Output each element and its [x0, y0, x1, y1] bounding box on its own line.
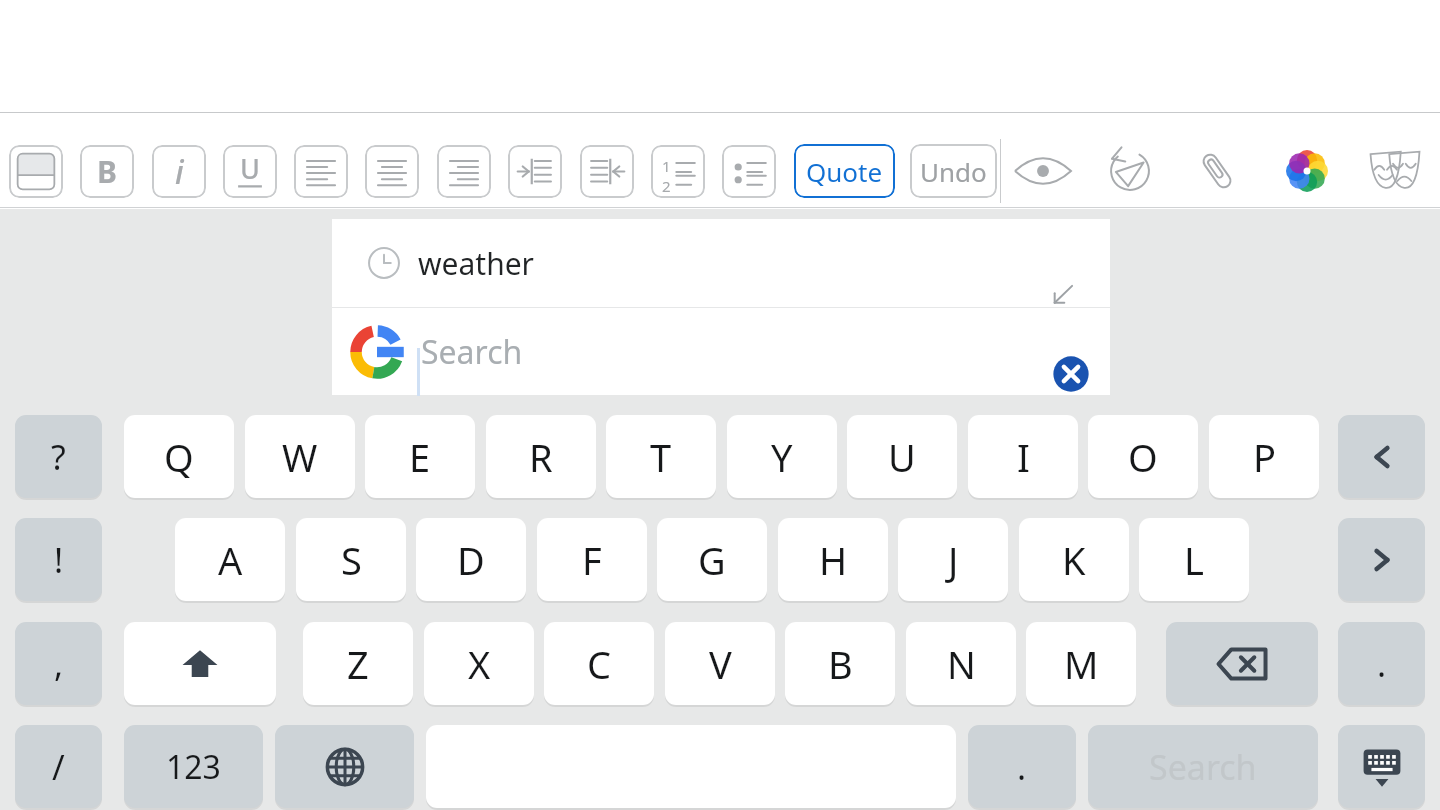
button[interactable]: Indent — [508, 145, 562, 198]
button[interactable]: G — [657, 518, 767, 601]
button[interactable]: F — [537, 518, 647, 601]
button[interactable]: Hide keyboard — [1338, 725, 1425, 808]
staticText: S — [341, 534, 362, 586]
button[interactable]: Shift — [124, 622, 276, 705]
staticText: W — [282, 431, 318, 483]
button[interactable]: Preview — [1008, 143, 1078, 199]
button[interactable]: K — [1019, 518, 1129, 601]
button[interactable]: Undo send — [1095, 143, 1165, 199]
staticText: H — [819, 534, 848, 586]
button[interactable]: ? — [15, 415, 102, 498]
staticText: Search — [1149, 744, 1257, 790]
staticText: C — [587, 638, 612, 690]
button[interactable]: Numbered list — [651, 145, 705, 198]
button[interactable]: weather — [332, 219, 1110, 307]
button[interactable]: W — [245, 415, 355, 498]
staticText: U — [240, 150, 260, 187]
button[interactable]: E — [365, 415, 475, 498]
staticText: P — [1253, 431, 1276, 483]
button[interactable]: Outdent — [580, 145, 634, 198]
staticText: weather — [418, 243, 535, 284]
button[interactable]: J — [898, 518, 1008, 601]
button[interactable]: H — [778, 518, 888, 601]
staticText: F — [582, 534, 602, 586]
button[interactable]: / — [15, 725, 102, 808]
button[interactable]: Photos — [1272, 143, 1342, 199]
button[interactable]: C — [544, 622, 654, 705]
button[interactable]: ! — [15, 518, 102, 601]
button[interactable]: L — [1139, 518, 1249, 601]
button[interactable]: V — [665, 622, 775, 705]
button[interactable]: , — [15, 622, 102, 705]
staticText: A — [218, 534, 243, 586]
button[interactable]: Backspace — [1166, 622, 1318, 705]
button[interactable]: Search — [332, 308, 1110, 395]
button[interactable]: N — [906, 622, 1016, 705]
staticText: V — [709, 638, 732, 690]
button[interactable]: X — [424, 622, 534, 705]
button[interactable]: Q — [124, 415, 234, 498]
button[interactable]: Align center — [365, 145, 419, 198]
button[interactable]: Bulleted list — [722, 145, 776, 198]
button[interactable]: B — [785, 622, 895, 705]
button[interactable]: Change language — [275, 725, 414, 808]
button[interactable]: M — [1026, 622, 1136, 705]
staticText: U — [888, 431, 916, 483]
button[interactable]: S — [296, 518, 406, 601]
button[interactable]: Previous — [1338, 415, 1425, 498]
staticText: Search — [421, 330, 523, 374]
button[interactable]: Bold — [80, 145, 134, 198]
staticText: K — [1062, 534, 1086, 586]
staticText: J — [948, 534, 959, 586]
staticText: 1 — [662, 156, 671, 176]
staticText: D — [457, 534, 485, 586]
button[interactable]: Italic — [152, 145, 206, 198]
staticText: / — [52, 744, 65, 790]
staticText: 2 — [662, 176, 671, 196]
button[interactable]: Clear — [1050, 353, 1092, 395]
button[interactable]: D — [416, 518, 526, 601]
staticText: I — [1017, 431, 1030, 483]
staticText: X — [468, 638, 491, 690]
button[interactable]: Underline — [223, 145, 277, 198]
staticText: N — [947, 638, 976, 690]
staticText: , — [54, 641, 64, 687]
button[interactable]: T — [606, 415, 716, 498]
button[interactable]: R — [486, 415, 596, 498]
button[interactable]: Color — [9, 145, 63, 198]
staticText: B — [97, 151, 117, 192]
button[interactable]: P — [1209, 415, 1319, 498]
staticText: T — [650, 431, 672, 483]
button[interactable]: A — [175, 518, 285, 601]
staticText: Quote — [806, 154, 883, 189]
button[interactable]: Align right — [437, 145, 491, 198]
staticText: Z — [347, 638, 369, 690]
button[interactable]: Undo — [910, 144, 997, 198]
staticText: . — [1017, 744, 1027, 790]
staticText: R — [529, 431, 553, 483]
staticText: i — [175, 150, 184, 194]
button[interactable]: Next — [1338, 518, 1425, 601]
button[interactable]: I — [968, 415, 1078, 498]
button[interactable]: Quote — [794, 144, 895, 198]
button[interactable]: Y — [727, 415, 837, 498]
staticText: B — [828, 638, 853, 690]
button[interactable]: Z — [303, 622, 413, 705]
button[interactable]: Align left — [294, 145, 348, 198]
button[interactable]: Attach file — [1182, 143, 1252, 199]
button[interactable]: Stickers — [1359, 143, 1431, 199]
button[interactable]: O — [1088, 415, 1198, 498]
staticText: Q — [164, 431, 194, 483]
staticText: O — [1128, 431, 1158, 483]
button[interactable]: 123 — [124, 725, 263, 808]
staticText: G — [698, 534, 726, 586]
button[interactable]: U — [847, 415, 957, 498]
staticText: . — [1377, 641, 1387, 687]
staticText: Y — [771, 431, 793, 483]
staticText: Undo — [920, 154, 987, 189]
staticText: ! — [54, 537, 64, 583]
button[interactable]: . — [968, 725, 1076, 808]
button[interactable]: . — [1338, 622, 1425, 705]
